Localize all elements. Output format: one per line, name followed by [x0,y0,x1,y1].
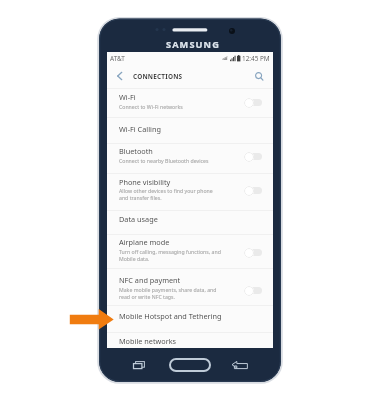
staticText: SAMSUNG [166,38,220,51]
button[interactable]: Recents [118,352,160,378]
staticText: Phone visibility [119,177,171,187]
staticText: Mobile Hotspot and Tethering [119,311,222,321]
staticText: Connect to nearby Bluetooth devices [119,157,209,164]
button[interactable]: Airplane mode toggle [240,247,264,258]
staticText: Allow other devices to find your phone a… [119,187,213,202]
button[interactable] [107,88,273,116]
staticText: AT&T [110,54,125,63]
staticText: Turn off calling, messaging functions, a… [119,248,221,263]
button[interactable] [107,305,273,333]
button[interactable] [107,117,273,145]
button[interactable]: Wi-Fi toggle [240,97,264,108]
staticText: Wi-Fi Calling [119,124,161,134]
staticText: Connect to Wi-Fi networks [119,103,183,110]
button[interactable] [107,210,273,238]
button[interactable]: Back [109,64,130,88]
button[interactable]: NFC and payment toggle [240,285,264,296]
button[interactable] [107,173,273,201]
button[interactable]: Bluetooth toggle [240,151,264,162]
button[interactable]: Search [248,64,270,88]
staticText: Bluetooth [119,146,153,156]
button[interactable] [107,234,273,262]
staticText: Wi-Fi [119,92,136,102]
staticText: NFC and payment [119,275,181,285]
button[interactable] [107,332,273,348]
staticText: CONNECTIONS [133,72,183,81]
button[interactable] [107,268,273,296]
staticText: Mobile networks [119,336,177,346]
button[interactable]: Home [163,350,217,380]
staticText: Airplane mode [119,237,170,247]
staticText: Make mobile payments, share data, and re… [119,286,217,301]
button[interactable]: Back [220,352,260,378]
staticText: 12:45 PM [242,54,270,63]
staticText: Data usage [119,214,158,224]
button[interactable] [107,143,273,171]
button[interactable]: Phone visibility toggle [240,185,264,196]
